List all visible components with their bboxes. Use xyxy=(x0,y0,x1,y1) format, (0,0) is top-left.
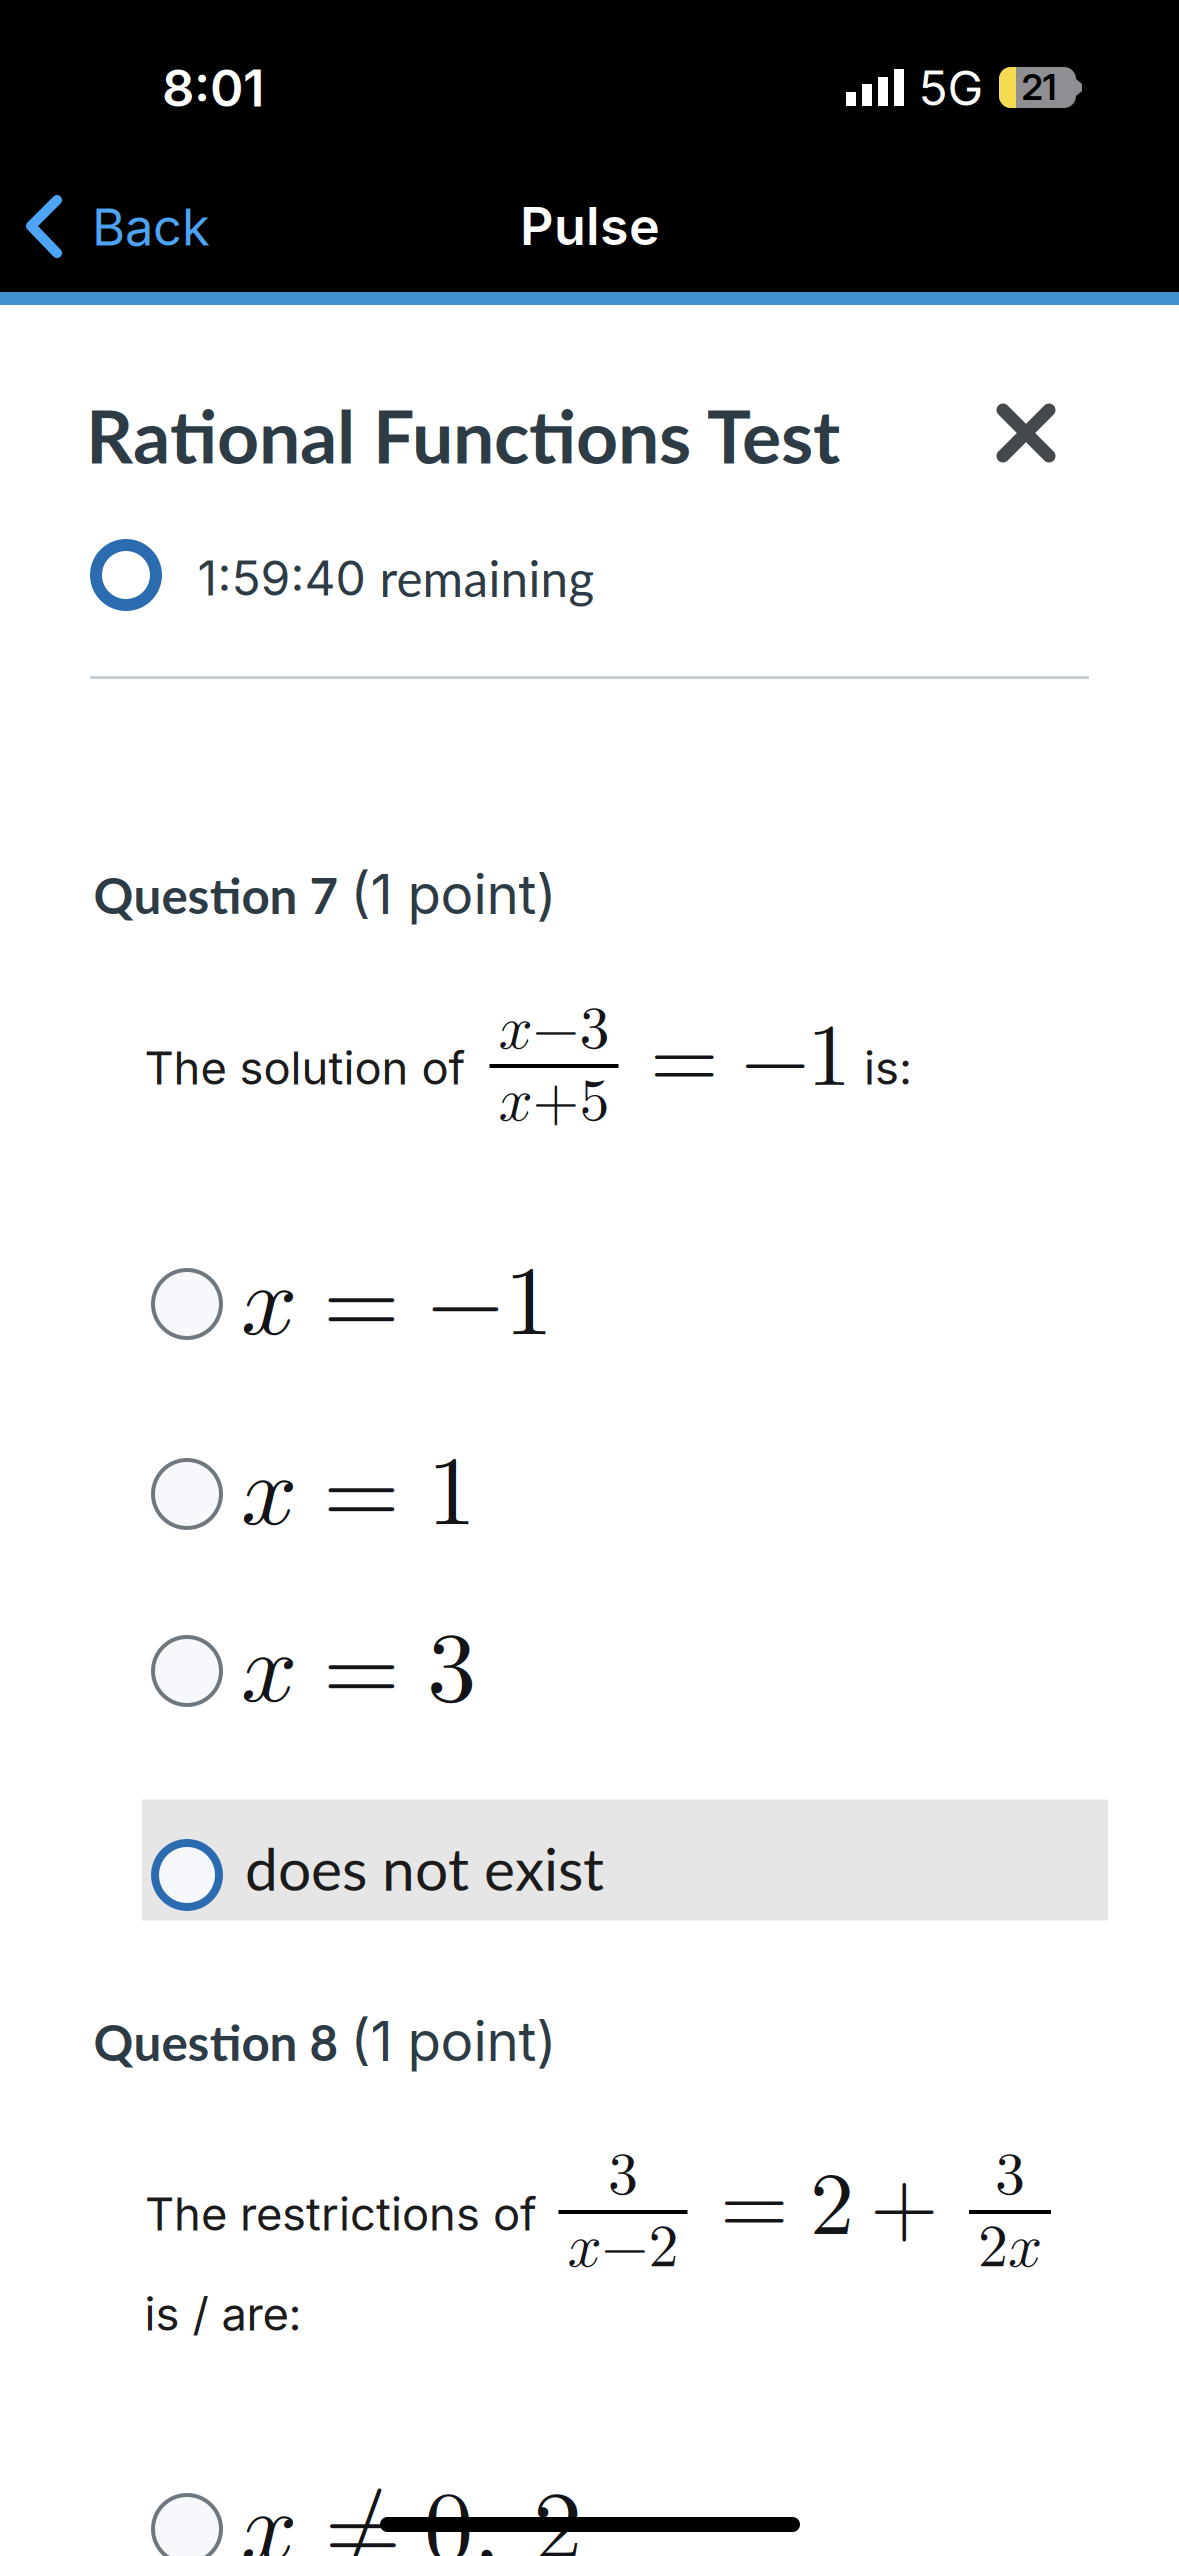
staticText: 1 xyxy=(427,1445,476,1543)
staticText: (1 point) xyxy=(350,861,556,927)
staticText: −1 xyxy=(427,1255,553,1353)
staticText: 21 xyxy=(1021,65,1056,109)
staticText: ≠ xyxy=(324,2481,401,2556)
button[interactable]: 𝑥 xyxy=(142,1239,1108,1369)
staticText: The restrictions of xyxy=(145,2187,537,2241)
button[interactable]: 𝑥 xyxy=(142,1606,1108,1736)
staticText: Back xyxy=(92,196,210,258)
staticText: Question 8 xyxy=(93,2012,350,2071)
staticText: remaining xyxy=(379,548,594,608)
staticText: 3 xyxy=(427,1622,476,1720)
staticText: 𝑥+5 xyxy=(498,1072,609,1132)
staticText: 𝑥 xyxy=(241,2481,297,2556)
staticText: 1:59:40 xyxy=(197,549,379,607)
staticText: 3 xyxy=(608,2146,638,2206)
staticText: 5G xyxy=(918,59,983,117)
staticText: = xyxy=(323,1445,400,1543)
staticText: = xyxy=(323,1622,400,1720)
staticText: is / are: xyxy=(144,2287,301,2341)
staticText: 𝑥−3 xyxy=(498,1000,609,1060)
button[interactable]: Back xyxy=(0,158,260,294)
staticText: 𝑥 xyxy=(241,1622,297,1720)
staticText: does not exist xyxy=(245,1833,604,1903)
staticText: (1 point) xyxy=(350,2008,556,2074)
staticText: = xyxy=(323,1255,400,1353)
staticText: The solution of xyxy=(144,1041,465,1095)
staticText: Question 7 xyxy=(93,865,350,924)
staticText: − xyxy=(741,1017,809,1105)
staticText: is: xyxy=(864,1041,912,1095)
staticText: + xyxy=(870,2163,938,2251)
staticText: 𝑥−2 xyxy=(567,2218,678,2278)
staticText: 2𝑥 xyxy=(978,2218,1042,2278)
staticText: 1 xyxy=(807,1014,851,1102)
button[interactable]: does not exist xyxy=(142,1799,1108,1920)
staticText: 0, 2 xyxy=(424,2481,582,2556)
staticText: 8:01 xyxy=(162,57,264,119)
staticText: Pulse xyxy=(520,194,660,257)
staticText: 𝑥 xyxy=(241,1445,297,1543)
staticText: 𝑥 xyxy=(241,1255,297,1353)
staticText: 3 xyxy=(995,2146,1025,2206)
button[interactable]: 𝑥 xyxy=(142,1429,1108,1559)
staticText: 2 xyxy=(810,2163,854,2251)
button[interactable]: Close quiz xyxy=(976,383,1076,483)
staticText: Rational Functions Test xyxy=(86,391,840,479)
staticText: = xyxy=(650,1017,718,1105)
staticText: = xyxy=(720,2163,788,2251)
